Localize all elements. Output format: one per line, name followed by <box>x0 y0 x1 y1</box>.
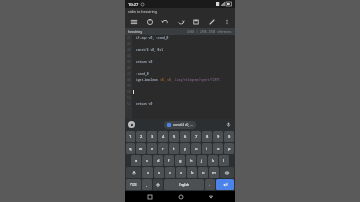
staticText: 41 <box>127 36 131 40</box>
button[interactable]: Undo <box>158 15 171 28</box>
button[interactable]: 9 <box>213 131 223 142</box>
button[interactable]: Emoji <box>153 179 163 190</box>
button[interactable]: m <box>209 167 219 178</box>
button[interactable]: c <box>165 167 175 178</box>
button[interactable]: ?123 <box>126 179 141 190</box>
button[interactable]: q <box>126 143 135 154</box>
button[interactable]: 1 <box>126 131 135 142</box>
button[interactable]: o <box>213 143 223 154</box>
staticText: 42 <box>127 42 131 46</box>
staticText: 6 <box>184 134 187 139</box>
button[interactable]: const/4 v0, ... <box>167 123 193 127</box>
staticText: 2 <box>140 134 143 139</box>
staticText: h <box>190 158 193 163</box>
button[interactable]: Save <box>189 15 202 28</box>
button[interactable]: k <box>208 155 218 166</box>
button[interactable]: More <box>220 15 233 28</box>
staticText: const/4 v0, ... <box>173 123 193 127</box>
button[interactable]: Menu <box>127 15 140 28</box>
staticText: 10:27 <box>128 2 139 7</box>
staticText: const/4 v0, 0x1 <box>136 48 164 52</box>
staticText: ?123 <box>130 183 137 187</box>
button[interactable]: n <box>198 167 208 178</box>
staticText: v <box>180 170 183 175</box>
button[interactable]: h <box>186 155 196 166</box>
staticText: English <box>179 183 190 187</box>
staticText: p <box>228 146 231 151</box>
button[interactable]: 5 <box>169 131 179 142</box>
staticText: g <box>179 158 182 163</box>
staticText: z <box>147 170 149 175</box>
staticText: 1 <box>129 134 132 139</box>
staticText: 49 <box>127 84 131 88</box>
button[interactable]: Edit <box>205 15 218 28</box>
button[interactable]: j <box>197 155 207 166</box>
button[interactable]: 2 <box>136 131 146 142</box>
button[interactable]: p <box>224 143 234 154</box>
button[interactable]: y <box>180 143 190 154</box>
button[interactable]: . <box>205 179 215 190</box>
button[interactable]: Microphone <box>225 121 232 128</box>
staticText: 3 <box>151 134 154 139</box>
staticText: t <box>173 146 175 151</box>
staticText: 7 <box>195 134 198 139</box>
button[interactable]: w <box>136 143 146 154</box>
button[interactable]: Recents <box>144 191 155 202</box>
button[interactable]: Enter <box>216 179 234 190</box>
button[interactable]: Shift <box>126 167 141 178</box>
staticText: v0, v0, <box>160 78 175 82</box>
button[interactable]: 4 <box>158 131 168 142</box>
staticText: b <box>191 170 194 175</box>
staticText: 46 <box>127 66 131 70</box>
button[interactable]: 3 <box>147 131 157 142</box>
staticText: c <box>169 170 171 175</box>
button[interactable]: d <box>153 155 163 166</box>
staticText: 4 <box>162 134 165 139</box>
button[interactable]: b <box>187 167 197 178</box>
button[interactable]: x <box>154 167 164 178</box>
button[interactable]: 0 <box>224 131 234 142</box>
staticText: n <box>202 170 205 175</box>
staticText: stdin to hexstring <box>128 9 157 14</box>
staticText: 43 <box>127 48 131 52</box>
button[interactable]: 8 <box>202 131 212 142</box>
staticText: 5 <box>173 134 176 139</box>
button[interactable]: Voice input <box>128 121 135 128</box>
staticText: Lorg/telegram/tgnet/TLRPC <box>175 78 221 82</box>
staticText: q <box>129 146 132 151</box>
staticText: 45 <box>127 60 131 64</box>
button[interactable]: t <box>169 143 179 154</box>
button[interactable]: z <box>142 167 153 178</box>
button[interactable]: Redo <box>174 15 187 28</box>
staticText: a <box>135 158 138 163</box>
button[interactable]: a <box>131 155 141 166</box>
button[interactable]: Back <box>205 191 216 202</box>
button[interactable]: English <box>164 179 204 190</box>
button[interactable]: g <box>175 155 185 166</box>
button[interactable]: 7 <box>191 131 201 142</box>
button[interactable]: i <box>202 143 212 154</box>
button[interactable]: Backspace <box>220 167 234 178</box>
button[interactable]: hexstring <box>128 28 232 35</box>
button[interactable]: u <box>191 143 201 154</box>
button[interactable]: , <box>142 179 152 190</box>
staticText: w <box>139 146 143 151</box>
staticText: x <box>158 170 161 175</box>
staticText: e <box>151 146 154 151</box>
button[interactable]: Run <box>143 15 156 28</box>
staticText: hexstring <box>128 30 143 34</box>
button[interactable]: 6 <box>180 131 190 142</box>
button[interactable]: e <box>147 143 157 154</box>
button[interactable]: f <box>164 155 174 166</box>
staticText: f <box>168 158 170 163</box>
button[interactable]: s <box>142 155 152 166</box>
button[interactable]: v <box>176 167 186 178</box>
staticText: if-eqz v0, :cond_0 <box>136 36 169 40</box>
button[interactable]: r <box>158 143 168 154</box>
staticText: k <box>212 158 215 163</box>
staticText: . <box>209 182 211 187</box>
staticText: return v0 <box>136 60 153 64</box>
button[interactable]: Home <box>175 191 186 202</box>
staticText: 44 <box>127 54 131 58</box>
button[interactable]: l <box>219 155 229 166</box>
